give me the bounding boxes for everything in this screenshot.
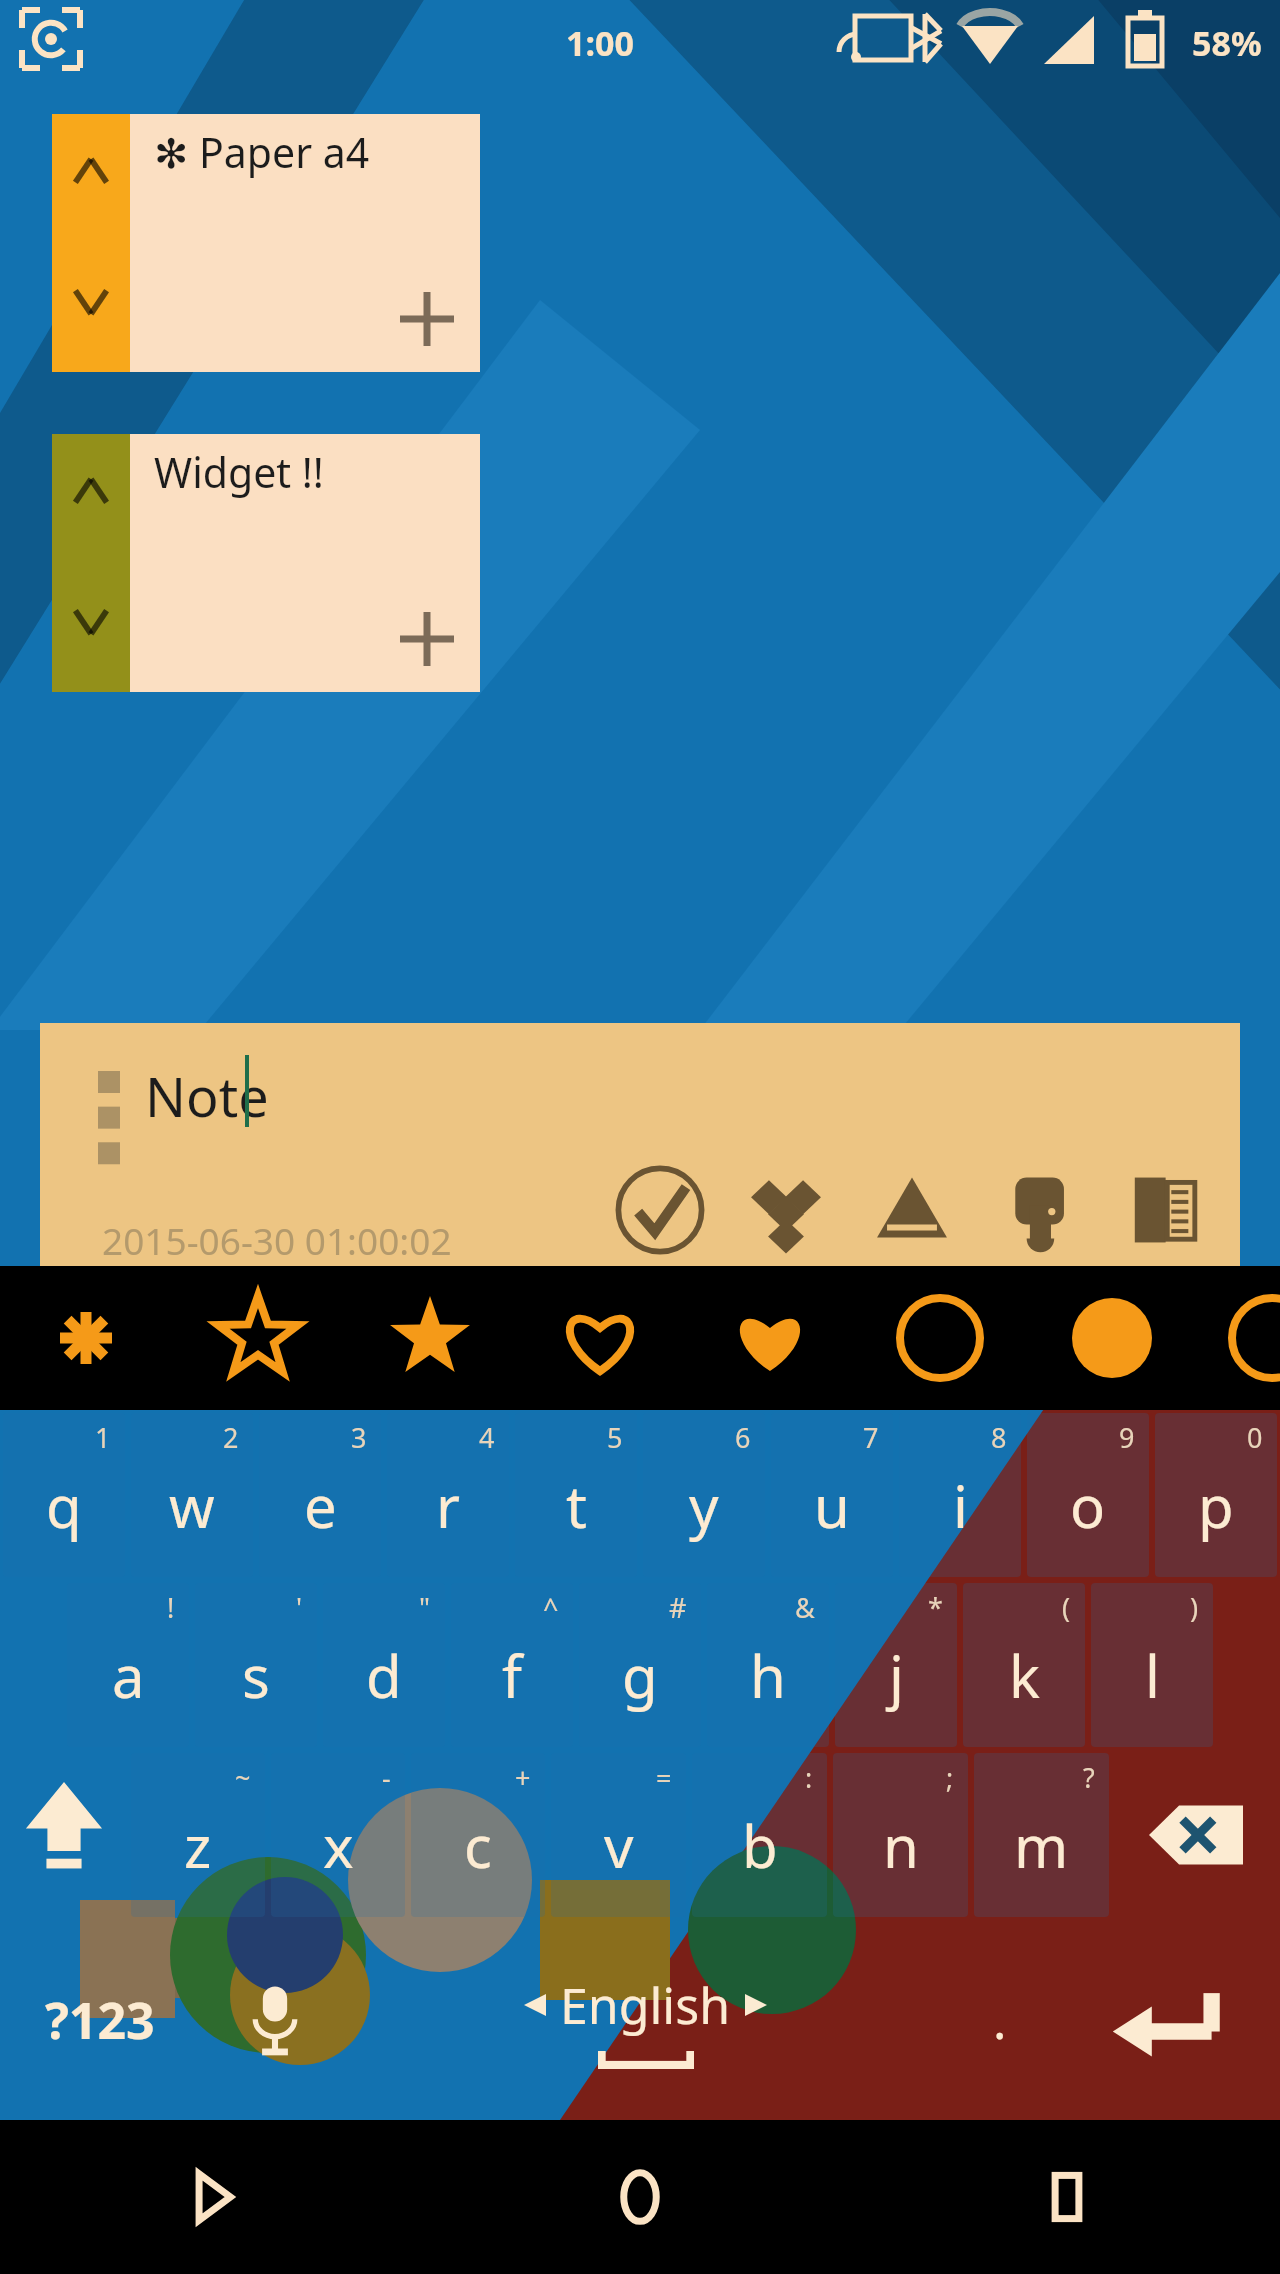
button[interactable]: ~ xyxy=(131,1753,265,1917)
staticText: * xyxy=(928,1589,943,1626)
staticText: x xyxy=(323,1806,354,1885)
staticText: 2015-06-30 01:00:02 xyxy=(102,1215,452,1265)
staticText: m xyxy=(1014,1806,1069,1885)
staticText: g xyxy=(622,1636,658,1715)
button[interactable]: Back xyxy=(0,2120,426,2274)
staticText: - xyxy=(382,1759,391,1796)
staticText: q xyxy=(46,1466,82,1545)
button[interactable]: Enter xyxy=(1060,1920,1280,2120)
button[interactable]: 2 xyxy=(131,1413,253,1577)
button[interactable]: ^ xyxy=(451,1583,573,1747)
button[interactable]: : xyxy=(692,1753,827,1917)
staticText: j xyxy=(889,1636,904,1715)
staticText: 1:00 xyxy=(566,20,634,66)
button[interactable]: & xyxy=(707,1583,829,1747)
staticText: ? xyxy=(1083,1759,1095,1796)
button[interactable]: 7 xyxy=(771,1413,893,1577)
button[interactable]: 3 xyxy=(259,1413,381,1577)
staticText: u xyxy=(814,1466,850,1545)
button[interactable] xyxy=(52,434,130,692)
staticText: ! xyxy=(167,1589,175,1626)
button[interactable]: = xyxy=(551,1753,686,1917)
button[interactable]: 8 xyxy=(899,1413,1021,1577)
button[interactable]: Evernote xyxy=(986,1158,1090,1262)
button[interactable]: ? xyxy=(974,1753,1109,1917)
staticText: 3 xyxy=(351,1419,367,1456)
staticText: w xyxy=(169,1466,215,1545)
staticText: ^ xyxy=(543,1589,559,1626)
button[interactable] xyxy=(52,114,130,372)
staticText: English xyxy=(560,1971,731,2039)
button[interactable]: ?123 xyxy=(0,1920,200,2120)
staticText: 2 xyxy=(223,1419,239,1456)
staticText: 58% xyxy=(1192,20,1262,66)
button[interactable]: ✻ Paper a4 xyxy=(52,114,480,372)
staticText: 5 xyxy=(607,1419,623,1456)
button[interactable]: # xyxy=(579,1583,701,1747)
staticText: ( xyxy=(1062,1589,1071,1626)
button[interactable]: Save note xyxy=(608,1158,712,1262)
staticText: 4 xyxy=(479,1419,495,1456)
staticText: " xyxy=(419,1589,431,1626)
button[interactable]: 9 xyxy=(1027,1413,1149,1577)
staticText: = xyxy=(656,1759,672,1796)
staticText: ) xyxy=(1190,1589,1199,1626)
button[interactable]: ) xyxy=(1091,1583,1213,1747)
button[interactable]: Note xyxy=(40,1023,1240,1266)
staticText: y xyxy=(689,1466,719,1545)
button[interactable]: ' xyxy=(195,1583,317,1747)
staticText: z xyxy=(184,1806,212,1885)
staticText: s xyxy=(242,1636,270,1715)
staticText: 8 xyxy=(991,1419,1007,1456)
button[interactable]: . xyxy=(940,1920,1060,2120)
button[interactable]: Add note xyxy=(400,612,454,666)
button[interactable]: Recent apps xyxy=(853,2120,1280,2274)
staticText: 0 xyxy=(1247,1419,1263,1456)
staticText: a xyxy=(112,1636,145,1715)
button[interactable]: Shift xyxy=(3,1753,125,1917)
button[interactable]: Home xyxy=(426,2120,853,2274)
staticText: 6 xyxy=(735,1419,751,1456)
button[interactable]: 1 xyxy=(3,1413,125,1577)
button[interactable]: - xyxy=(271,1753,405,1917)
staticText: h xyxy=(750,1636,786,1715)
staticText: Note xyxy=(145,1059,269,1133)
staticText: & xyxy=(795,1589,815,1626)
staticText: ~ xyxy=(235,1759,251,1796)
button[interactable]: " xyxy=(323,1583,445,1747)
button[interactable]: ( xyxy=(963,1583,1085,1747)
staticText: r xyxy=(436,1466,460,1545)
button[interactable]: Widget !! xyxy=(52,434,480,692)
button[interactable]: ! xyxy=(67,1583,189,1747)
button[interactable]: 0 xyxy=(1155,1413,1277,1577)
staticText: ' xyxy=(296,1589,303,1626)
button[interactable]: Google Drive xyxy=(860,1158,964,1262)
button[interactable]: + xyxy=(411,1753,545,1917)
staticText: 7 xyxy=(863,1419,879,1456)
button[interactable]: * xyxy=(835,1583,957,1747)
staticText: i xyxy=(953,1466,968,1545)
button[interactable]: Dropbox xyxy=(734,1158,838,1262)
button[interactable]: Backspace xyxy=(1115,1753,1277,1917)
staticText: f xyxy=(502,1636,522,1715)
staticText: t xyxy=(566,1466,587,1545)
staticText: n xyxy=(883,1806,919,1885)
staticText: v xyxy=(604,1806,634,1885)
staticText: ?123 xyxy=(45,1986,155,2054)
staticText: c xyxy=(464,1806,492,1885)
staticText: ; xyxy=(946,1759,954,1796)
staticText: ✻ Paper a4 xyxy=(154,124,370,180)
button[interactable]: 6 xyxy=(643,1413,765,1577)
button[interactable]: ; xyxy=(833,1753,968,1917)
staticText: o xyxy=(1070,1466,1106,1545)
button[interactable]: 4 xyxy=(387,1413,509,1577)
button[interactable]: Voice input xyxy=(200,1920,350,2120)
staticText: p xyxy=(1198,1466,1234,1545)
staticText: d xyxy=(366,1636,402,1715)
staticText: k xyxy=(1009,1636,1040,1715)
button[interactable]: OneNote xyxy=(1112,1158,1216,1262)
button[interactable]: Add note xyxy=(400,292,454,346)
staticText: b xyxy=(742,1806,778,1885)
button[interactable]: English xyxy=(350,1920,940,2120)
button[interactable]: 5 xyxy=(515,1413,637,1577)
